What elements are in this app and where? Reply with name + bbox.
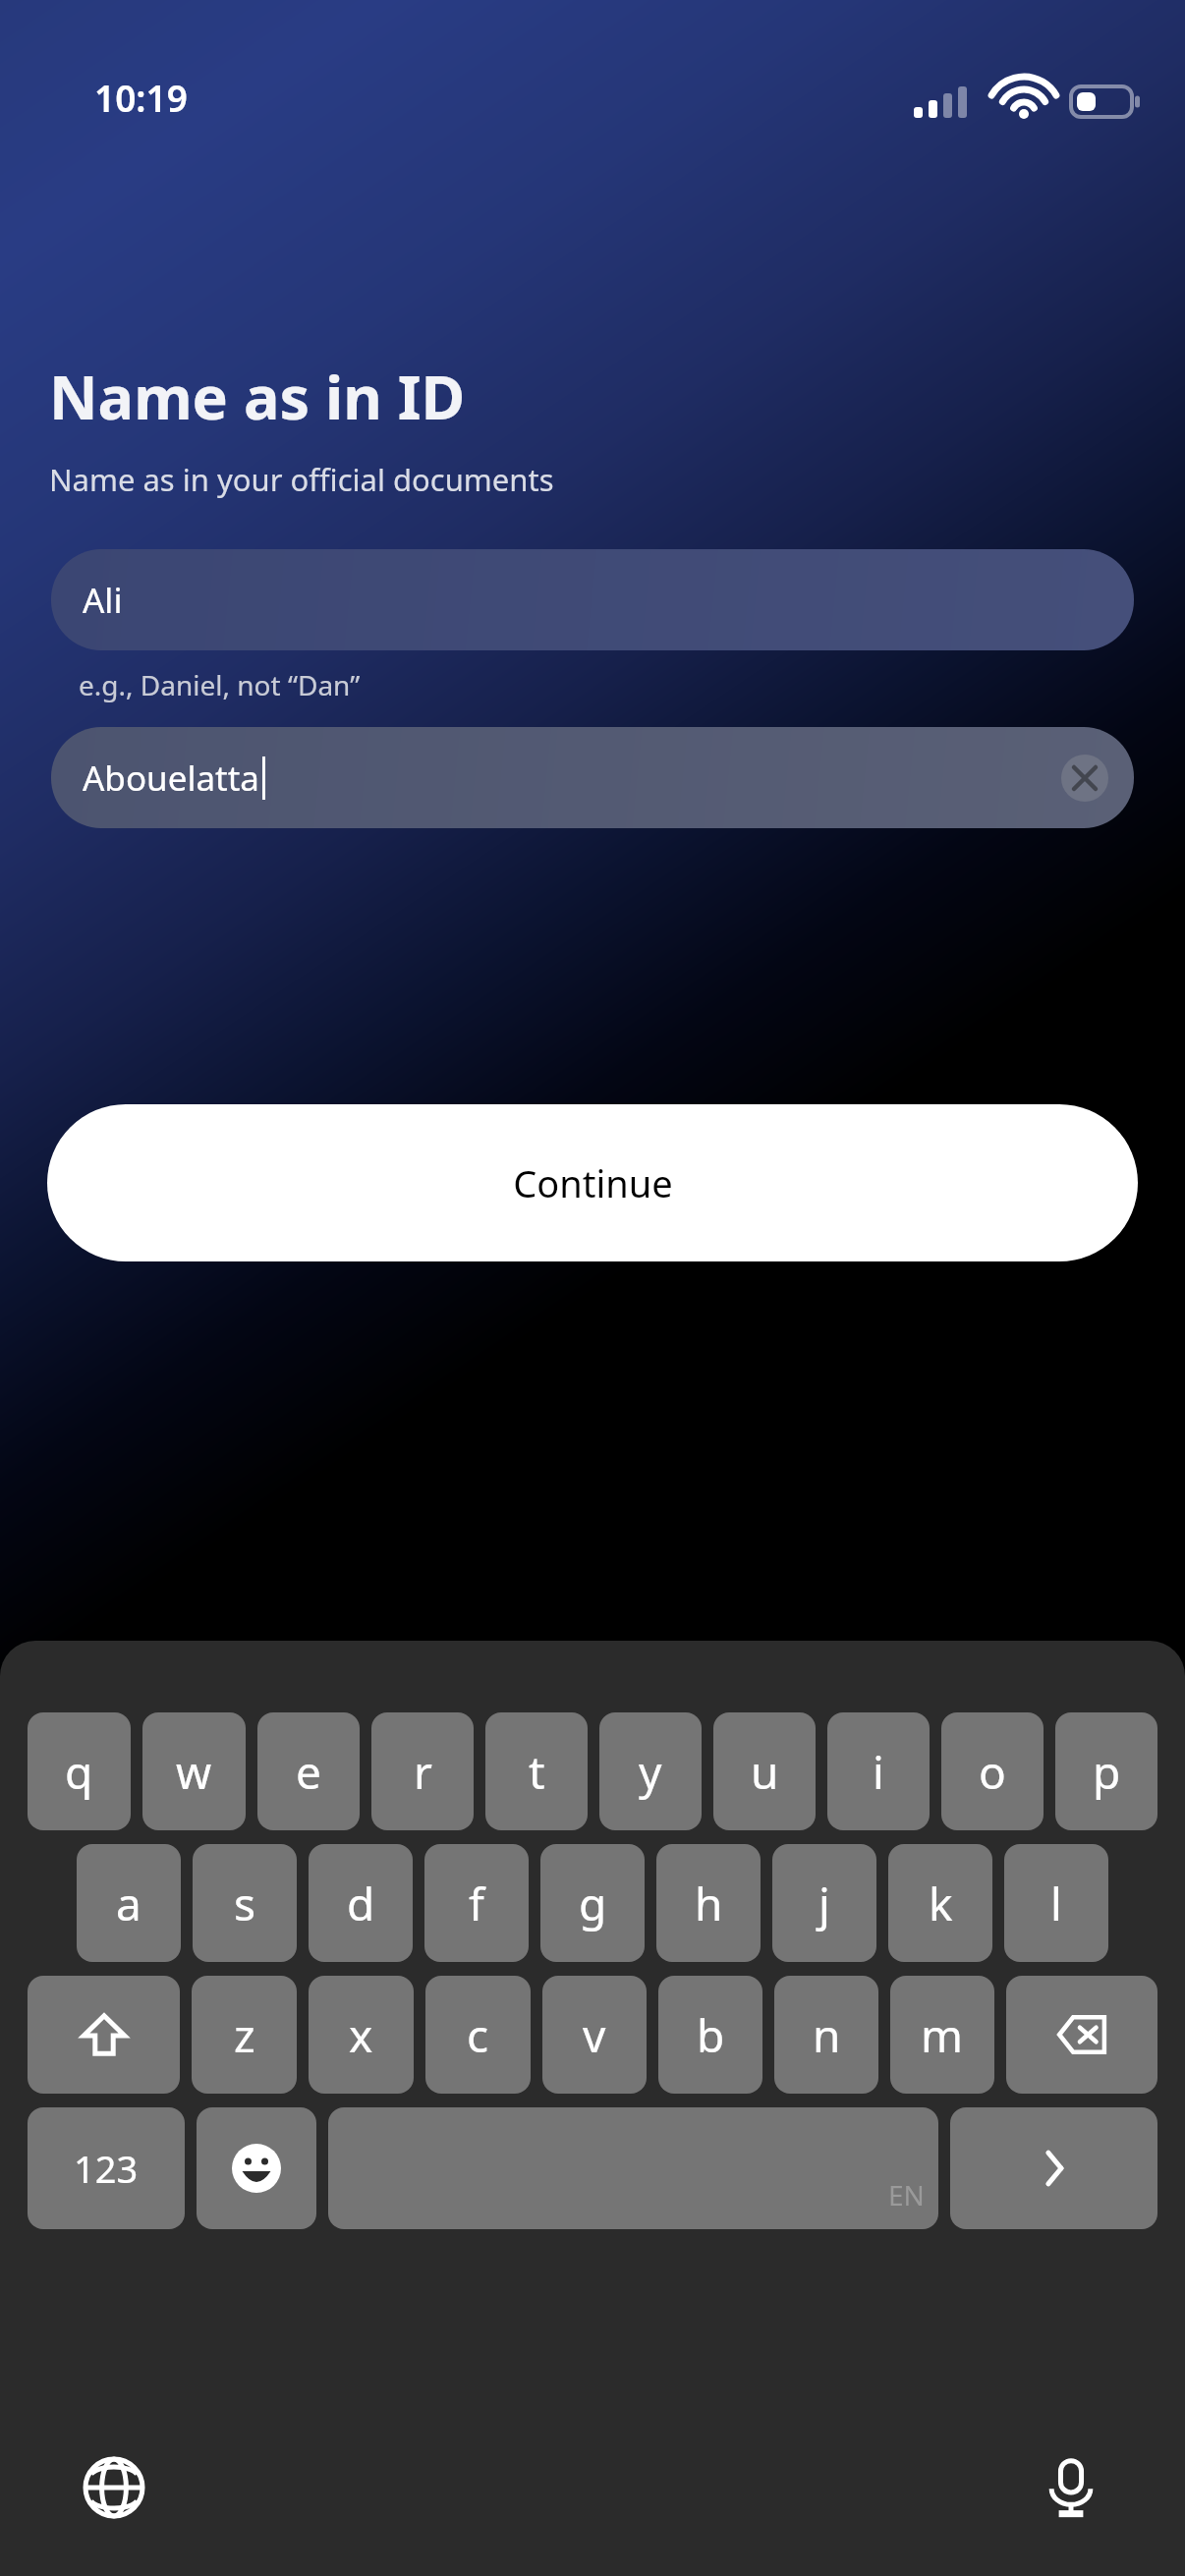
staticText: w: [176, 1741, 212, 1803]
button[interactable]: w: [142, 1712, 246, 1830]
button[interactable]: e: [257, 1712, 360, 1830]
button[interactable]: x: [309, 1976, 414, 2094]
button[interactable]: y: [599, 1712, 702, 1830]
staticText: a: [116, 1873, 141, 1934]
staticText: EN: [888, 2176, 925, 2213]
button[interactable]: p: [1055, 1712, 1157, 1830]
staticText: f: [469, 1873, 484, 1934]
staticText: Continue: [513, 1157, 673, 1208]
staticText: l: [1050, 1873, 1062, 1934]
button[interactable]: a: [77, 1844, 181, 1962]
staticText: z: [234, 2004, 255, 2066]
button[interactable]: f: [424, 1844, 529, 1962]
button[interactable]: Emoji: [197, 2107, 316, 2229]
button[interactable]: t: [485, 1712, 588, 1830]
button[interactable]: c: [425, 1976, 531, 2094]
button[interactable]: q: [28, 1712, 131, 1830]
button[interactable]: Return: [950, 2107, 1157, 2229]
button[interactable]: i: [827, 1712, 930, 1830]
button[interactable]: m: [890, 1976, 994, 2094]
staticText: g: [579, 1873, 607, 1934]
button[interactable]: EN: [328, 2107, 938, 2229]
staticText: Name as in your official documents: [49, 459, 554, 500]
button[interactable]: o: [941, 1712, 1044, 1830]
staticText: k: [929, 1873, 953, 1934]
button[interactable]: k: [888, 1844, 992, 1962]
button[interactable]: Clear text: [1061, 755, 1108, 802]
staticText: j: [818, 1873, 830, 1934]
button[interactable]: Shift: [28, 1976, 180, 2094]
staticText: e: [296, 1741, 321, 1803]
button[interactable]: b: [658, 1976, 762, 2094]
staticText: p: [1093, 1741, 1121, 1803]
staticText: t: [529, 1741, 545, 1803]
staticText: s: [234, 1873, 256, 1934]
staticText: c: [467, 2004, 489, 2066]
staticText: i: [873, 1741, 884, 1803]
button[interactable]: n: [774, 1976, 878, 2094]
button[interactable]: Abouelatta: [51, 727, 1134, 828]
button[interactable]: Ali: [51, 549, 1134, 650]
staticText: v: [583, 2004, 606, 2066]
staticText: u: [751, 1741, 779, 1803]
staticText: Ali: [83, 577, 123, 624]
staticText: 10:19: [94, 73, 188, 122]
staticText: x: [349, 2004, 373, 2066]
staticText: o: [979, 1741, 1006, 1803]
staticText: q: [65, 1741, 93, 1803]
staticText: h: [695, 1873, 723, 1934]
staticText: r: [414, 1741, 432, 1803]
button[interactable]: g: [540, 1844, 645, 1962]
button[interactable]: Voice input: [1034, 2450, 1108, 2525]
staticText: Name as in ID: [49, 356, 466, 437]
button[interactable]: 123: [28, 2107, 185, 2229]
staticText: 123: [74, 2143, 139, 2194]
button[interactable]: l: [1004, 1844, 1108, 1962]
button[interactable]: u: [713, 1712, 816, 1830]
staticText: y: [639, 1741, 662, 1803]
button[interactable]: h: [656, 1844, 761, 1962]
button[interactable]: j: [772, 1844, 876, 1962]
staticText: n: [813, 2004, 841, 2066]
staticText: Abouelatta: [83, 755, 260, 802]
button[interactable]: z: [192, 1976, 297, 2094]
button[interactable]: Backspace: [1006, 1976, 1157, 2094]
staticText: d: [347, 1873, 375, 1934]
button[interactable]: Continue: [47, 1104, 1138, 1261]
button[interactable]: v: [542, 1976, 647, 2094]
staticText: m: [921, 2004, 964, 2066]
button[interactable]: d: [309, 1844, 413, 1962]
staticText: e.g., Daniel, not “Dan”: [79, 666, 361, 703]
button[interactable]: Change keyboard language: [77, 2450, 151, 2525]
button[interactable]: r: [371, 1712, 474, 1830]
staticText: b: [697, 2004, 725, 2066]
button[interactable]: s: [193, 1844, 297, 1962]
